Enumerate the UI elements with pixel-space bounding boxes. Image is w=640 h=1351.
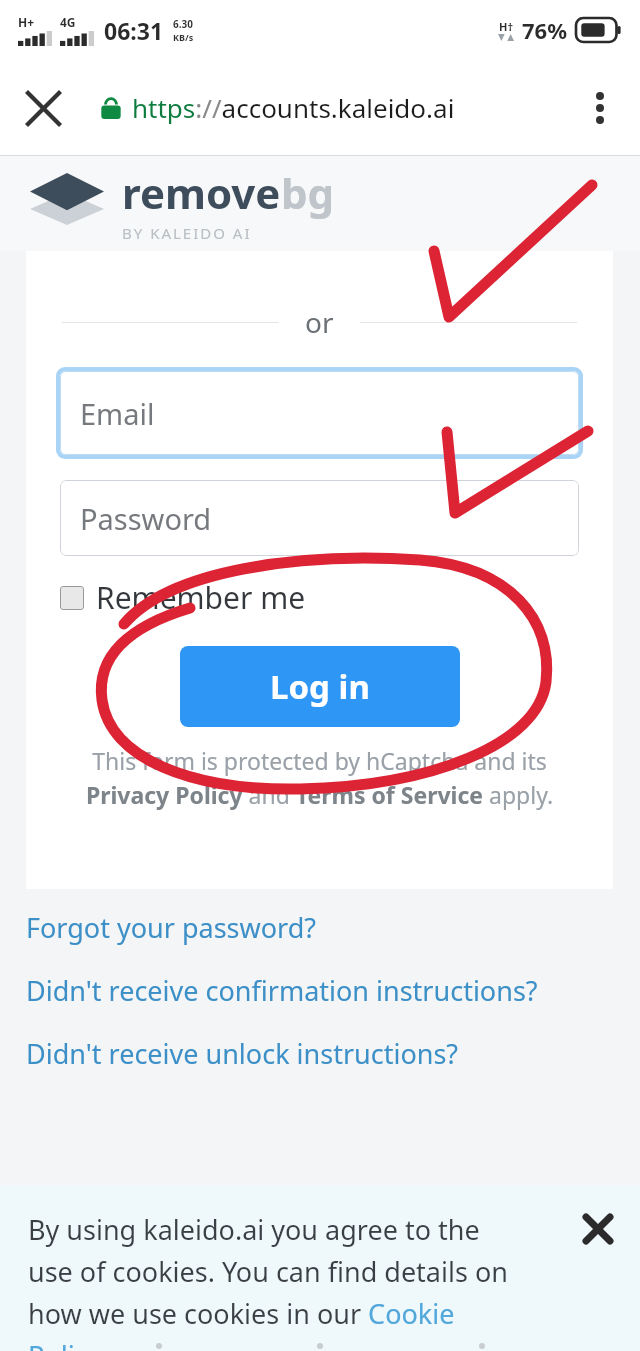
staticText: 76%: [522, 15, 568, 45]
staticText: Email: [80, 394, 155, 433]
staticText: KB/s: [173, 31, 194, 43]
staticText: By using kaleido.ai you agree to the use…: [28, 1211, 525, 1351]
staticText: remove: [122, 164, 281, 221]
staticText: 06:31: [104, 15, 164, 46]
staticText: This form is protected by hCaptcha and i…: [68, 745, 571, 810]
staticText: BY KALEIDO AI: [122, 223, 252, 243]
button[interactable]: Close: [14, 79, 72, 137]
button[interactable]: remove: [30, 164, 335, 243]
staticText: Remember me: [96, 577, 306, 618]
button[interactable]: Close cookie banner: [570, 1201, 626, 1257]
staticText: Log in: [270, 664, 370, 709]
button[interactable]: More options: [572, 80, 628, 136]
button[interactable]: Forgot your password?: [26, 909, 317, 946]
button[interactable]: Email: [60, 371, 579, 455]
staticText: or: [305, 303, 334, 341]
button[interactable]: Didn't receive confirmation instructions…: [26, 972, 538, 1009]
staticText: Forgot your password?: [26, 909, 317, 946]
staticText: https://accounts.kaleido.ai: [132, 90, 455, 125]
button[interactable]: Remember me: [60, 577, 306, 618]
staticText: H†: [499, 19, 514, 34]
staticText: 4G: [60, 14, 76, 30]
button[interactable]: Didn't receive unlock instructions?: [26, 1035, 459, 1072]
staticText: bg: [281, 164, 335, 221]
button[interactable]: Log in: [180, 646, 460, 727]
button[interactable]: Password: [60, 480, 579, 556]
staticText: Didn't receive unlock instructions?: [26, 1035, 459, 1072]
staticText: H+: [18, 14, 35, 30]
staticText: 6.30: [173, 17, 193, 31]
staticText: Didn't receive confirmation instructions…: [26, 972, 538, 1009]
staticText: Password: [80, 499, 212, 538]
